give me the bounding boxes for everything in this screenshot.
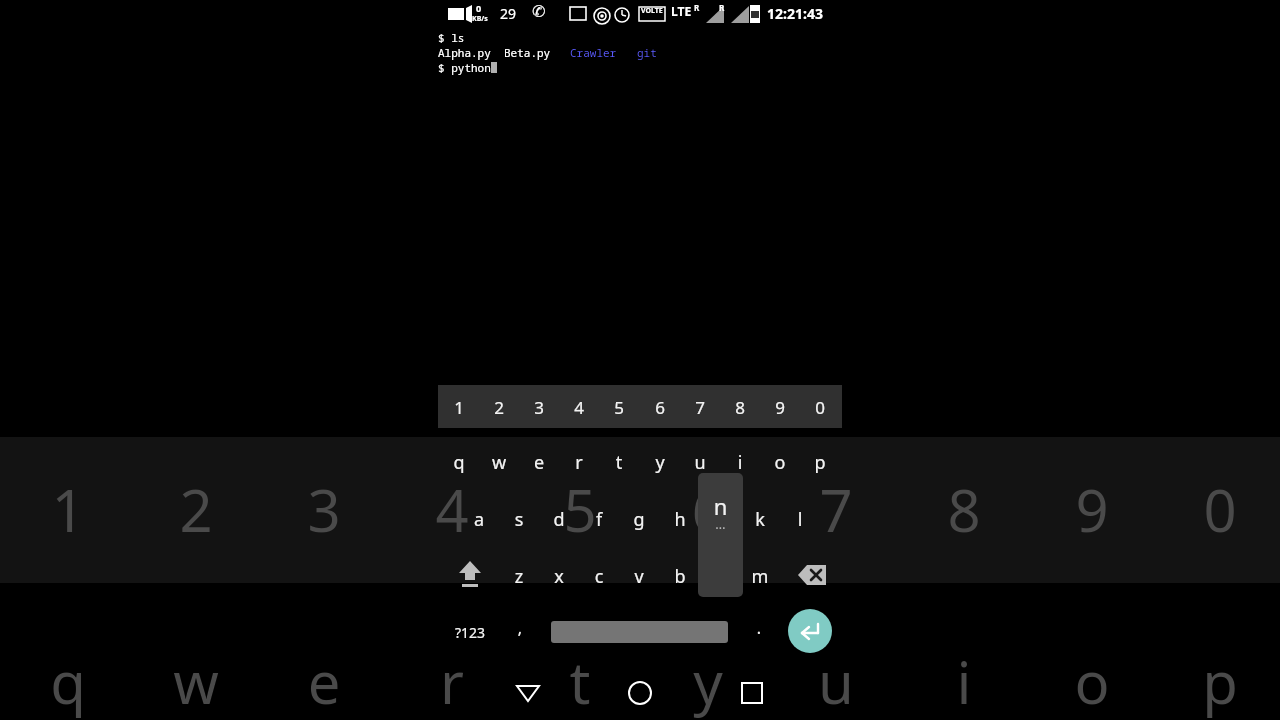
staticText: d (539, 507, 579, 532)
staticText: o (760, 450, 800, 475)
staticText: a (459, 507, 499, 532)
button[interactable]: . (739, 613, 779, 643)
button[interactable]: Home (618, 671, 662, 715)
button[interactable]: d (539, 502, 579, 536)
button[interactable]: 4 (559, 391, 599, 423)
button[interactable]: 6 (640, 391, 680, 423)
button[interactable]: v (619, 559, 659, 593)
button[interactable]: Space (551, 621, 728, 643)
button[interactable]: r (559, 445, 599, 479)
button[interactable]: h (660, 502, 700, 536)
staticText: 0 (800, 396, 840, 419)
staticText: R (719, 2, 725, 13)
button[interactable]: w (479, 445, 519, 479)
staticText: 5 (520, 470, 640, 549)
button[interactable]: 0 (800, 391, 840, 423)
button[interactable]: 5 (599, 391, 639, 423)
staticText: 1 (8, 470, 128, 549)
staticText: 12:21:43 (767, 4, 823, 23)
staticText: VOLTE (641, 6, 663, 16)
staticText: y (648, 642, 768, 720)
button[interactable]: , (500, 613, 540, 643)
staticText: u (680, 450, 720, 475)
staticText: 3 (264, 470, 384, 549)
staticText: h (660, 507, 700, 532)
button[interactable]: m (740, 559, 780, 593)
staticText: l (780, 507, 820, 532)
button[interactable]: Shift (448, 553, 492, 597)
button[interactable]: Backspace (788, 555, 832, 595)
staticText: t (599, 450, 639, 475)
staticText: x (539, 564, 579, 589)
button[interactable]: 3 (519, 391, 559, 423)
staticText: 4 (392, 470, 512, 549)
staticText: z (499, 564, 539, 589)
staticText: i (904, 642, 1024, 720)
button[interactable]: 7 (680, 391, 720, 423)
button[interactable]: g (619, 502, 659, 536)
staticText: b (660, 564, 700, 589)
button[interactable]: Back (506, 671, 550, 715)
staticText: u (776, 642, 896, 720)
staticText: KB/s (472, 14, 488, 24)
staticText: 8 (720, 396, 760, 419)
staticText: i (720, 450, 760, 475)
staticText: 2 (479, 396, 519, 419)
staticText: 9 (760, 396, 800, 419)
button[interactable]: ?123 (450, 619, 490, 646)
staticText: … (698, 515, 743, 533)
button[interactable]: 2 (479, 391, 519, 423)
button[interactable]: a (459, 502, 499, 536)
staticText: y (640, 450, 680, 475)
button[interactable]: Enter (788, 609, 832, 653)
staticText: ?123 (450, 623, 490, 642)
button[interactable]: t (599, 445, 639, 479)
staticText: v (619, 564, 659, 589)
staticText: $ ls (438, 30, 465, 45)
staticText: j (700, 507, 740, 532)
button[interactable]: o (760, 445, 800, 479)
button[interactable]: 1 (439, 391, 479, 423)
button[interactable]: b (660, 559, 700, 593)
button[interactable]: z (499, 559, 539, 593)
staticText: 7 (776, 470, 896, 549)
button[interactable]: u (680, 445, 720, 479)
button[interactable]: n (698, 473, 743, 597)
staticText: q (439, 450, 479, 475)
button[interactable]: i (720, 445, 760, 479)
staticText: 7 (680, 396, 720, 419)
staticText: n (698, 491, 743, 521)
button[interactable]: l (780, 502, 820, 536)
button[interactable]: q (439, 445, 479, 479)
button[interactable]: 8 (720, 391, 760, 423)
staticText: Alpha.py Beta.py (438, 45, 570, 60)
staticText: R (694, 2, 700, 13)
staticText: r (559, 450, 599, 475)
button[interactable]: k (740, 502, 780, 536)
staticText: $ python (438, 60, 491, 75)
staticText: e (519, 450, 559, 475)
button[interactable]: c (579, 559, 619, 593)
button[interactable]: Recents (730, 671, 774, 715)
staticText: w (479, 450, 519, 475)
button[interactable]: y (640, 445, 680, 479)
staticText: k (740, 507, 780, 532)
staticText: 6 (640, 396, 680, 419)
staticText: m (740, 564, 780, 589)
staticText: 1 (439, 396, 479, 419)
staticText: t (520, 642, 640, 720)
button[interactable]: s (499, 502, 539, 536)
button[interactable]: f (579, 502, 619, 536)
staticText: c (579, 564, 619, 589)
button[interactable]: 9 (760, 391, 800, 423)
button[interactable]: x (539, 559, 579, 593)
staticText: 29 (500, 4, 517, 23)
button[interactable]: j (700, 502, 740, 536)
staticText: q (8, 642, 128, 720)
staticText: p (1160, 642, 1280, 720)
button[interactable]: p (800, 445, 840, 479)
staticText: p (800, 450, 840, 475)
button[interactable]: e (519, 445, 559, 479)
staticText: git (637, 45, 657, 60)
